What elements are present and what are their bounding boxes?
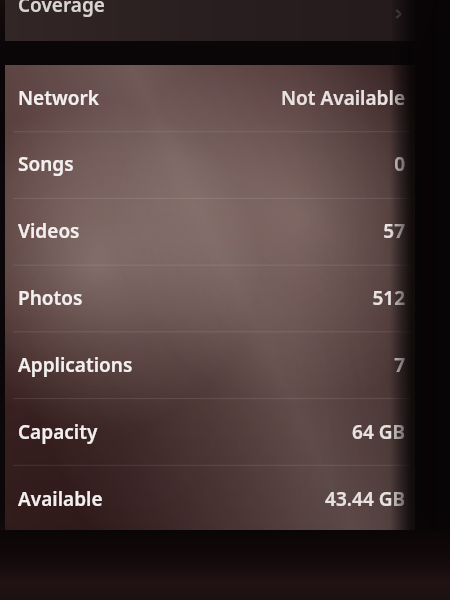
button[interactable]: Applications xyxy=(5,331,415,398)
staticText: 7 xyxy=(394,352,405,378)
staticText: 0 xyxy=(394,151,405,177)
staticText: Not Available xyxy=(281,85,405,111)
staticText: Capacity xyxy=(18,419,98,445)
staticText: Songs xyxy=(18,151,74,177)
button[interactable]: Coverage xyxy=(5,0,415,41)
staticText: Network xyxy=(18,85,99,111)
staticText: Available xyxy=(18,486,103,512)
staticText: Applications xyxy=(18,352,133,378)
button[interactable]: Songs xyxy=(5,131,415,197)
staticText: 512 xyxy=(372,285,405,311)
staticText: Photos xyxy=(18,285,83,311)
other: More xyxy=(391,6,407,22)
staticText: Videos xyxy=(18,218,80,244)
button[interactable]: Capacity xyxy=(5,398,415,465)
button[interactable]: Photos xyxy=(5,264,415,331)
staticText: 43.44 GB xyxy=(325,486,405,512)
button[interactable]: Available xyxy=(5,465,415,532)
button[interactable]: Videos xyxy=(5,197,415,264)
staticText: Coverage xyxy=(18,0,105,18)
staticText: 64 GB xyxy=(352,419,405,445)
staticText: 57 xyxy=(383,218,405,244)
button[interactable]: Network xyxy=(5,65,415,131)
